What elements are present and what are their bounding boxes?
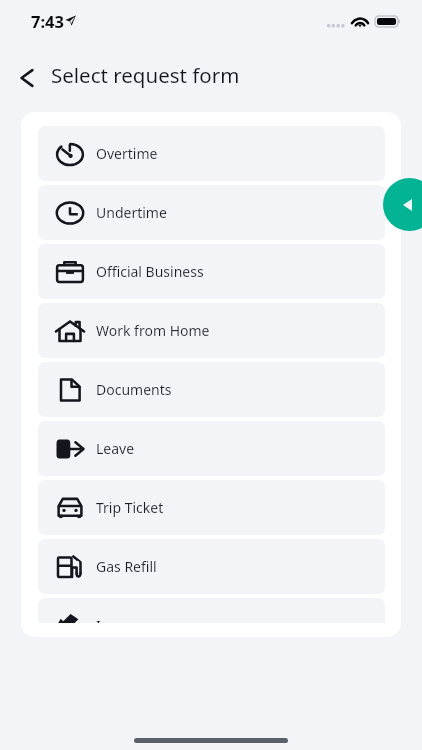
- staticText: Overtime: [96, 144, 158, 163]
- button[interactable]: Gas Refill: [38, 539, 385, 594]
- staticText: Insurance: [96, 616, 162, 623]
- button[interactable]: Leave: [38, 421, 385, 476]
- staticText: Documents: [96, 380, 172, 399]
- staticText: Work from Home: [96, 321, 210, 340]
- staticText: Official Business: [96, 262, 204, 281]
- staticText: Gas Refill: [96, 557, 157, 576]
- button[interactable]: Documents: [38, 362, 385, 417]
- button[interactable]: Back: [9, 60, 44, 95]
- button[interactable]: Undertime: [38, 185, 385, 240]
- button[interactable]: Open side drawer: [383, 178, 422, 231]
- staticText: Trip Ticket: [96, 498, 164, 517]
- button[interactable]: Work from Home: [38, 303, 385, 358]
- button[interactable]: Insurance: [38, 598, 385, 623]
- staticText: Undertime: [96, 203, 167, 222]
- button[interactable]: Overtime: [38, 126, 385, 181]
- button[interactable]: Official Business: [38, 244, 385, 299]
- staticText: Leave: [96, 439, 135, 458]
- staticText: Select request form: [51, 61, 240, 89]
- staticText: 7:43: [31, 10, 64, 32]
- button[interactable]: Trip Ticket: [38, 480, 385, 535]
